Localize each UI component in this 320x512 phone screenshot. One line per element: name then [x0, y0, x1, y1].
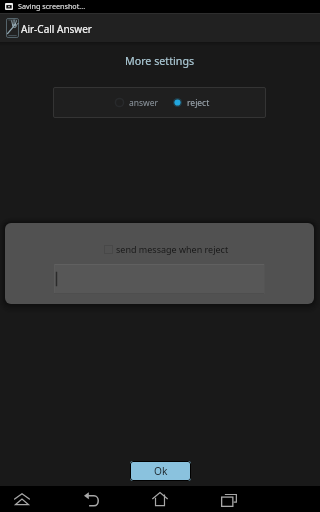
staticText: Air-Call Answer — [21, 22, 92, 36]
button[interactable]: Back — [75, 486, 109, 512]
button[interactable]: Recents — [212, 486, 246, 512]
staticText: answer — [129, 97, 159, 109]
button[interactable]: Home — [143, 486, 177, 512]
button[interactable]: reject — [173, 88, 210, 117]
staticText: Ok — [154, 464, 168, 478]
staticText: send message when reject — [116, 243, 229, 255]
staticText: Saving screenshot... — [18, 1, 86, 11]
staticText: More settings — [125, 54, 195, 69]
button[interactable]: Menu — [5, 486, 39, 512]
staticText: reject — [187, 97, 210, 109]
button[interactable]: answer — [115, 88, 159, 117]
button[interactable]: Ok — [130, 461, 191, 481]
button[interactable]: send message when reject — [104, 243, 229, 255]
